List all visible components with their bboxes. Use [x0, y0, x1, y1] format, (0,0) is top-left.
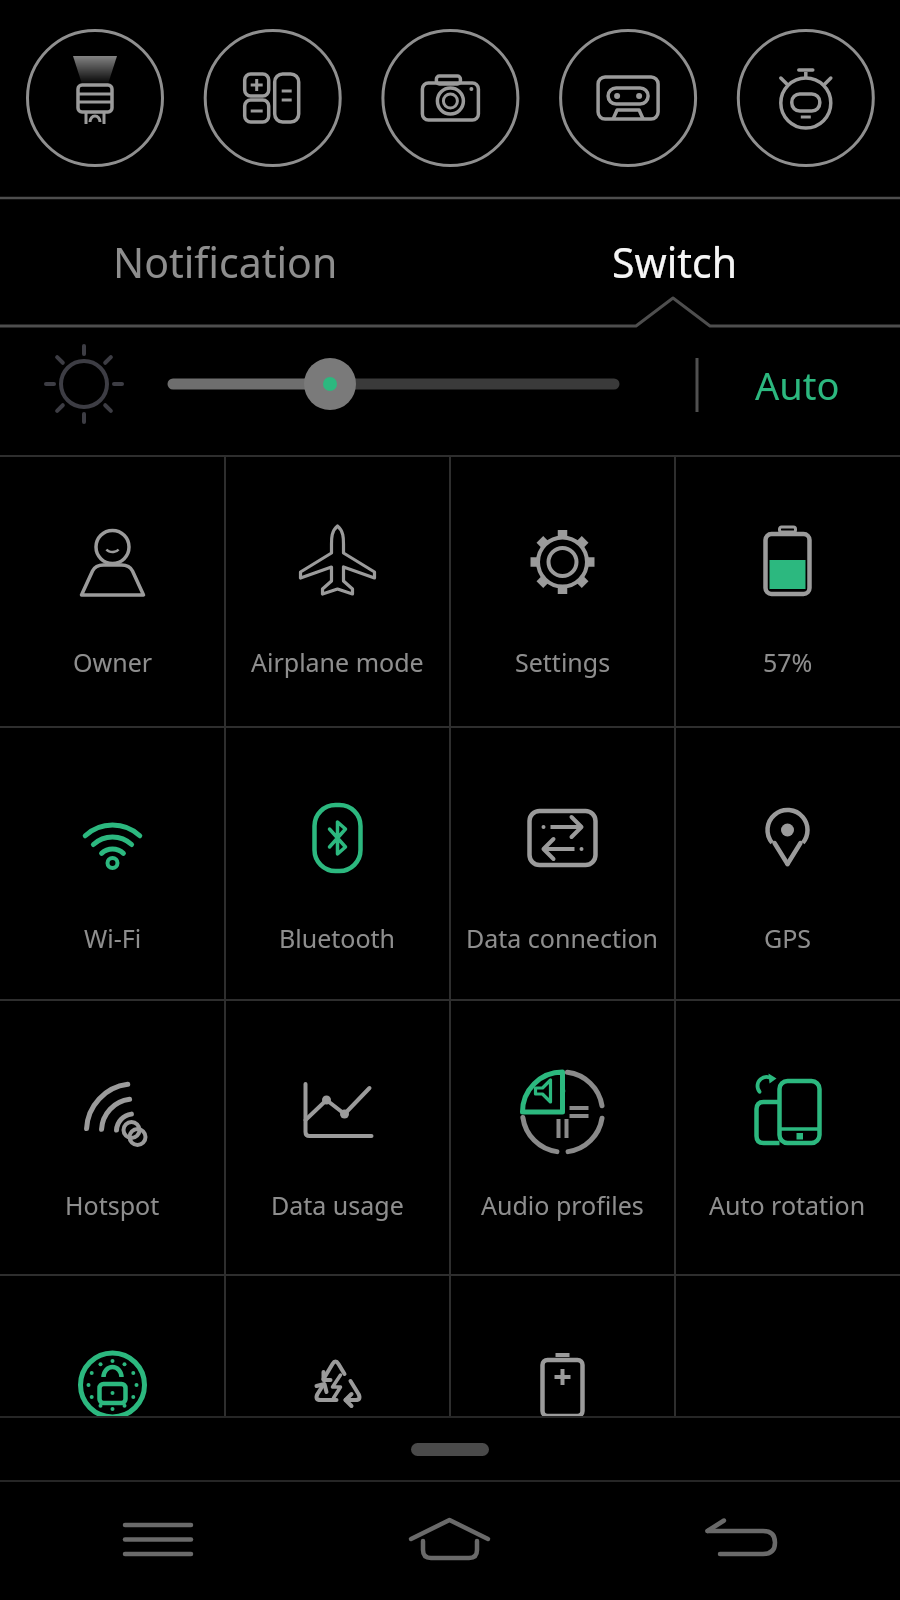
staticText: Auto rotation	[709, 1188, 866, 1222]
button[interactable]	[0, 456, 225, 727]
staticText: Switch	[612, 234, 738, 290]
button[interactable]	[675, 456, 900, 727]
button[interactable]	[0, 200, 450, 326]
staticText: Wi-Fi	[84, 921, 142, 955]
button[interactable]	[450, 200, 900, 326]
button[interactable]	[225, 456, 450, 727]
button[interactable]	[60, 1482, 256, 1600]
staticText: Bluetooth	[279, 921, 396, 955]
button[interactable]	[27, 30, 163, 166]
button[interactable]	[352, 1482, 548, 1600]
button[interactable]	[225, 1275, 450, 1416]
button[interactable]	[0, 1275, 225, 1416]
staticText: Airplane mode	[251, 645, 424, 679]
button[interactable]	[0, 727, 225, 1000]
button[interactable]	[382, 30, 518, 166]
button[interactable]	[225, 727, 450, 1000]
staticText: Data usage	[271, 1188, 404, 1222]
button[interactable]	[0, 1000, 225, 1275]
button[interactable]	[450, 456, 675, 727]
button[interactable]	[450, 1000, 675, 1275]
button[interactable]	[450, 727, 675, 1000]
button[interactable]	[675, 1000, 900, 1275]
button[interactable]	[450, 1275, 675, 1416]
button[interactable]	[644, 1482, 840, 1600]
staticText: 57%	[763, 645, 813, 679]
staticText: Owner	[73, 645, 153, 679]
staticText: Audio profiles	[481, 1188, 644, 1222]
button[interactable]	[738, 30, 874, 166]
staticText: Data connection	[466, 921, 659, 955]
button[interactable]	[710, 345, 890, 425]
button[interactable]	[675, 727, 900, 1000]
staticText: Notification	[113, 234, 338, 290]
staticText: GPS	[764, 921, 812, 955]
staticText: Settings	[515, 645, 611, 679]
staticText: Auto	[755, 359, 840, 411]
button[interactable]	[205, 30, 341, 166]
button[interactable]	[560, 30, 696, 166]
button[interactable]	[225, 1000, 450, 1275]
staticText: Hotspot	[65, 1188, 160, 1222]
